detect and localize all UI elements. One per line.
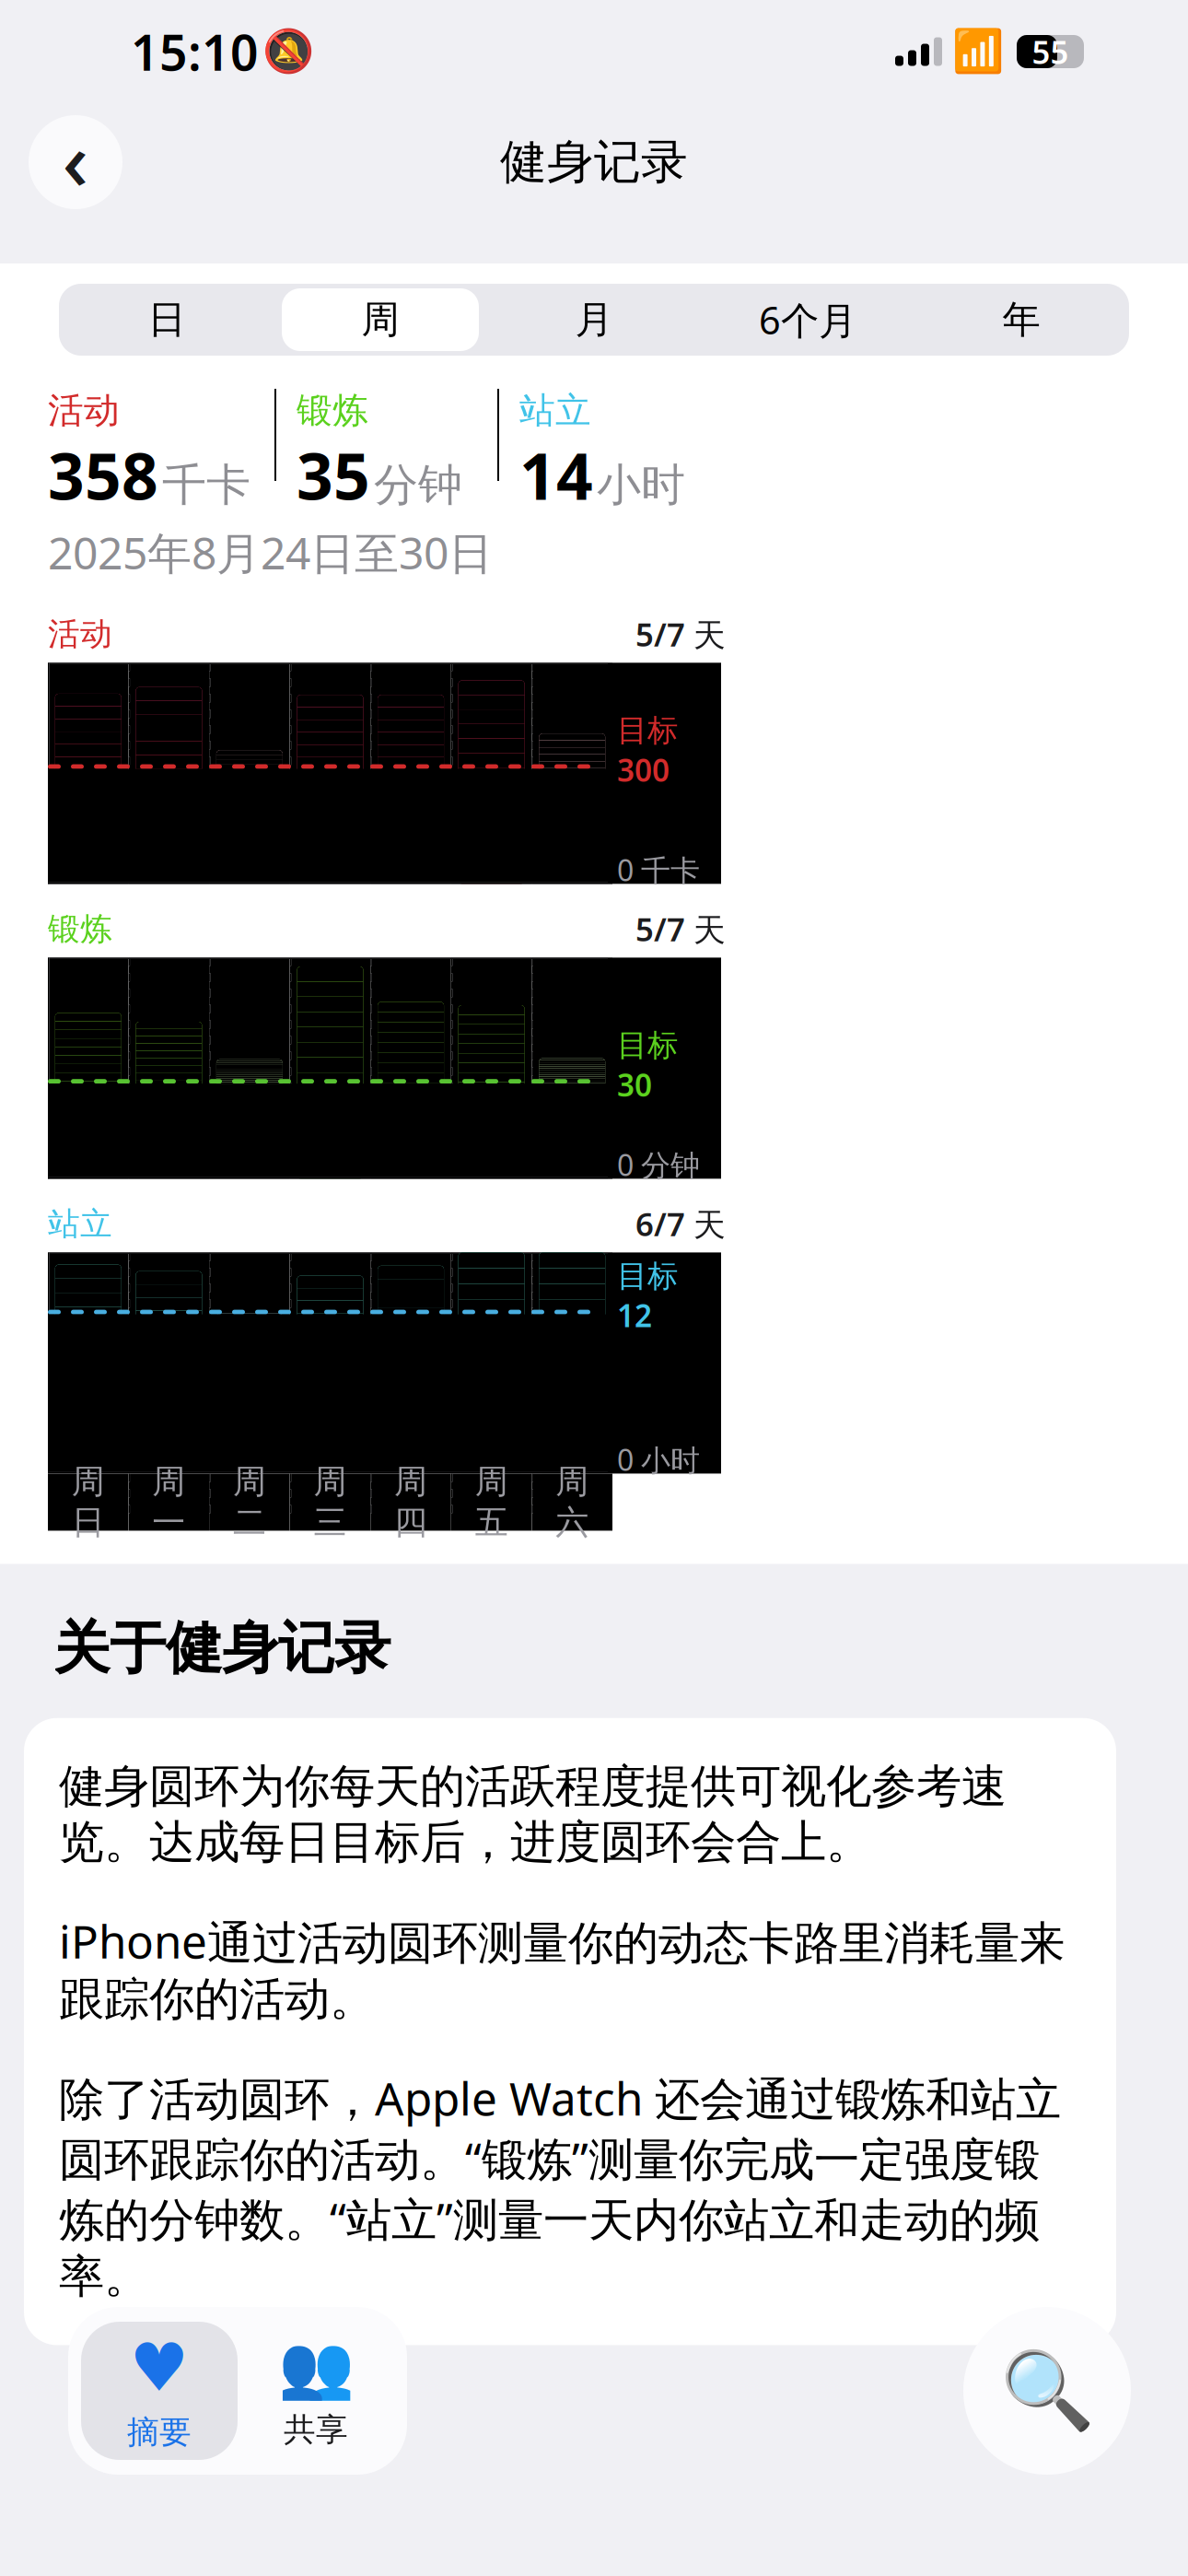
staticText: 周日 xyxy=(72,1461,105,1543)
staticText: 健身圆环为你每天的活跃程度提供可视化参考速览。达成每日目标后，进度圆环会合上。 xyxy=(59,1759,1007,1870)
staticText: 300 xyxy=(617,749,670,790)
staticText: 0 千卡 xyxy=(617,850,700,889)
staticText: 千卡 xyxy=(162,458,250,512)
button[interactable]: 👥 xyxy=(238,2322,394,2460)
staticText: 周六 xyxy=(556,1461,589,1543)
staticText: 0 分钟 xyxy=(617,1145,700,1184)
staticText: 月 xyxy=(575,296,613,343)
staticText: ‹ xyxy=(62,105,89,212)
button[interactable]: 搜索 xyxy=(963,2307,1131,2475)
staticText: 0 小时 xyxy=(617,1440,700,1479)
staticText: 周五 xyxy=(475,1461,508,1543)
button[interactable]: 6个月 xyxy=(701,284,914,356)
staticText: 目标 xyxy=(617,1027,678,1064)
staticText: 锻炼 xyxy=(297,389,368,433)
staticText: 小时 xyxy=(597,458,685,512)
staticText: 15:10 xyxy=(131,19,259,84)
staticText: 周四 xyxy=(394,1461,427,1543)
staticText: ♥︎ xyxy=(129,2330,189,2405)
staticText: 周二 xyxy=(233,1461,266,1543)
staticText: 摘要 xyxy=(127,2413,192,2452)
staticText: 6/7 天 xyxy=(635,1203,726,1245)
staticText: 站立 xyxy=(48,1204,112,1244)
staticText: 14 xyxy=(519,433,593,517)
staticText: 目标 xyxy=(617,712,678,749)
staticText: 358 xyxy=(48,433,158,517)
button[interactable]: 年 xyxy=(914,284,1128,356)
staticText: 周三 xyxy=(314,1461,347,1543)
staticText: 锻炼 xyxy=(48,909,112,949)
staticText: 日 xyxy=(148,296,186,343)
staticText: 年 xyxy=(1002,296,1040,343)
button[interactable]: 月 xyxy=(487,284,701,356)
button[interactable]: 返回 xyxy=(29,115,122,209)
staticText: 活动 xyxy=(48,389,120,433)
staticText: 站立 xyxy=(519,389,591,433)
staticText: 周 xyxy=(361,296,399,343)
staticText: 健身记录 xyxy=(500,133,688,191)
staticText: 2025年8月24日至30日 xyxy=(48,523,493,582)
staticText: 5/7 天 xyxy=(635,908,726,950)
staticText: 分钟 xyxy=(374,458,462,512)
staticText: 📶 xyxy=(952,28,1004,75)
button[interactable]: ♥︎ xyxy=(81,2322,238,2460)
staticText: 6个月 xyxy=(759,294,856,345)
staticText: iPhone通过活动圆环测量你的动态卡路里消耗量来跟踪你的活动。 xyxy=(59,1911,1065,2027)
staticText: 目标 xyxy=(617,1257,678,1295)
staticText: 🔕 xyxy=(262,28,314,75)
staticText: 关于健身记录 xyxy=(53,1614,390,1683)
staticText: 周一 xyxy=(152,1461,185,1543)
staticText: 活动 xyxy=(48,615,112,654)
staticText: 除了活动圆环，Apple Watch 还会通过锻炼和站立圆环跟踪你的活动。“锻炼… xyxy=(59,2068,1061,2305)
staticText: 55 xyxy=(1032,30,1069,73)
staticText: 🔍 xyxy=(1000,2347,1095,2434)
button[interactable]: 周 xyxy=(274,284,487,356)
staticText: 35 xyxy=(297,433,370,517)
staticText: 12 xyxy=(617,1295,652,1336)
staticText: 30 xyxy=(617,1064,652,1105)
staticText: 👥 xyxy=(278,2332,354,2403)
button[interactable]: 日 xyxy=(60,284,274,356)
staticText: 5/7 天 xyxy=(635,613,726,655)
staticText: 共享 xyxy=(284,2410,348,2449)
